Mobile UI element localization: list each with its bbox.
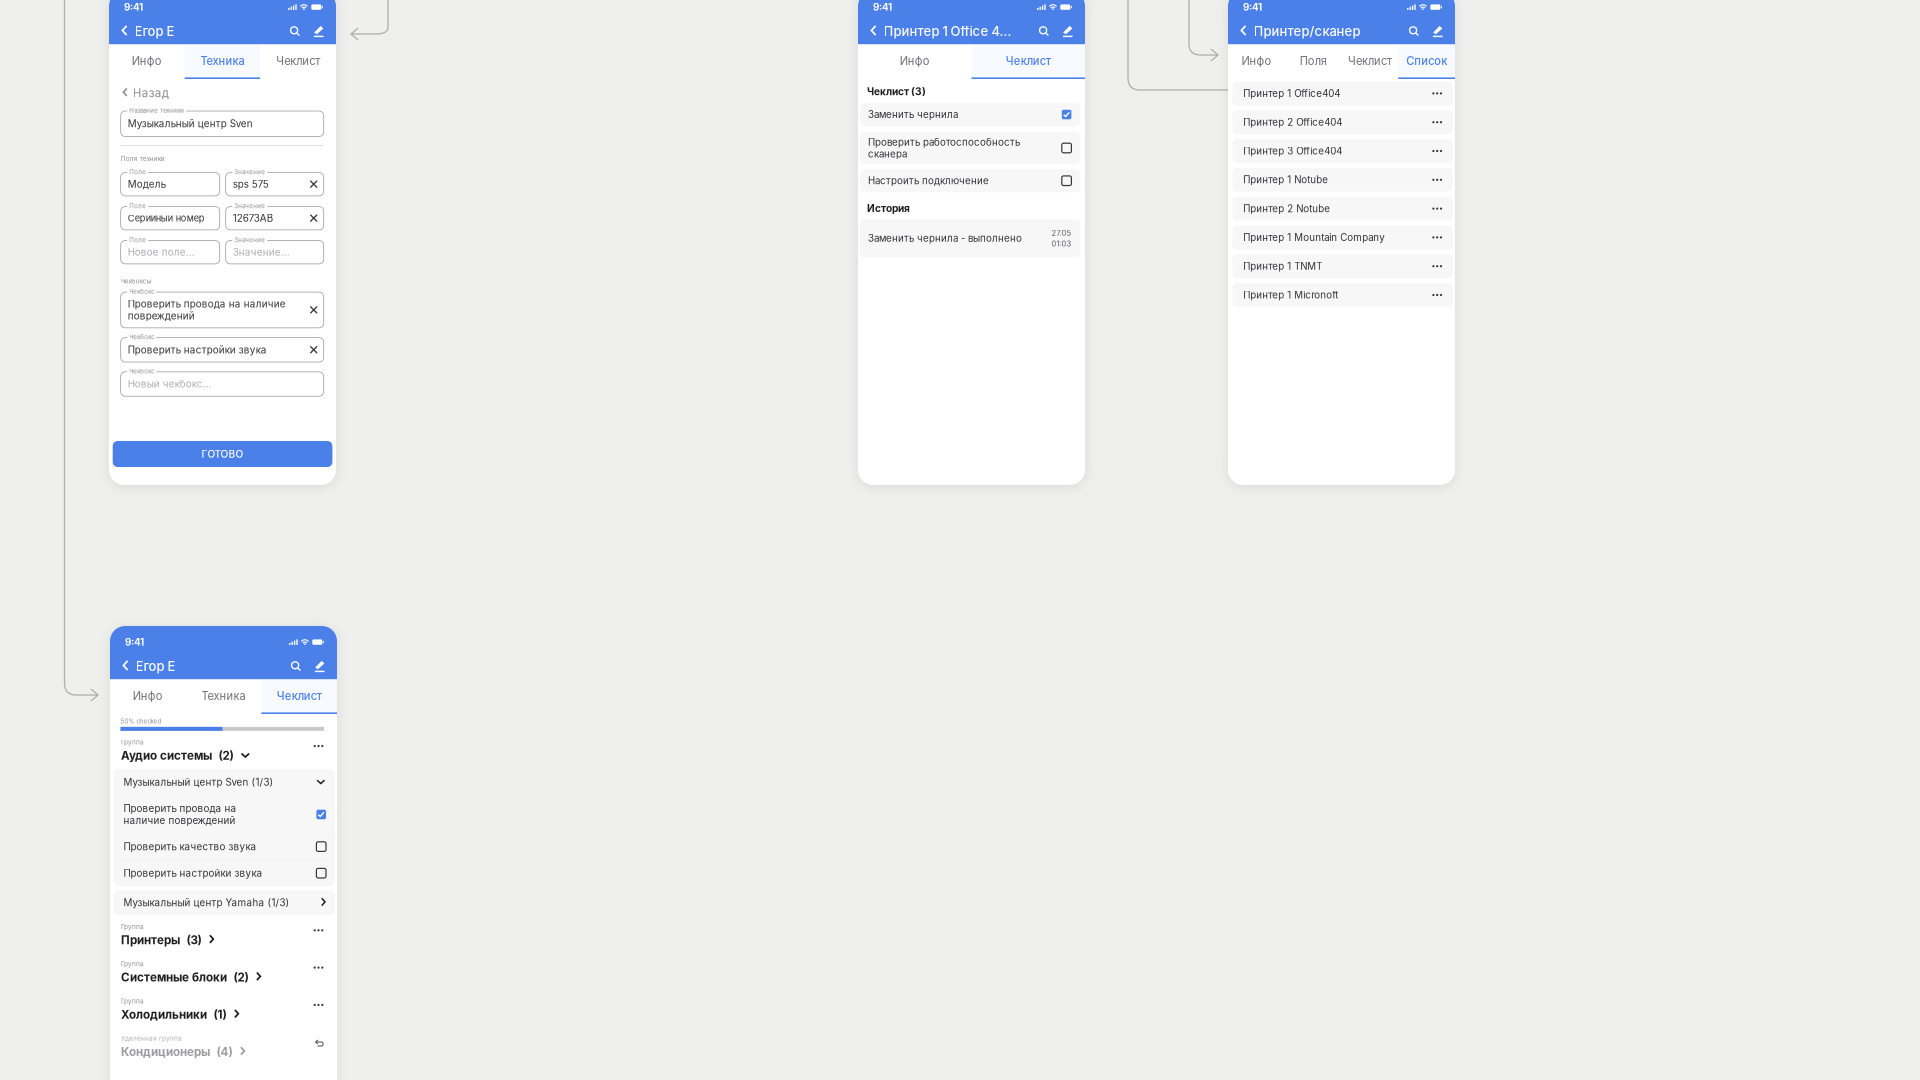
button[interactable]: Edit [1424, 20, 1455, 42]
button[interactable]: Принтер 1 Office404 [1232, 81, 1453, 105]
button[interactable]: More options [313, 916, 324, 953]
staticText: Принтер 1 Micronoft [1243, 289, 1338, 301]
button[interactable]: More options [313, 991, 324, 1028]
button[interactable]: More options [1432, 81, 1443, 105]
staticText: Принтер 1 TNMT [1243, 260, 1322, 272]
button[interactable]: Чеклист [1341, 45, 1398, 79]
button[interactable]: Search [286, 20, 305, 42]
button[interactable]: Принтер 2 Office404 [1232, 110, 1453, 134]
button[interactable]: More options [1432, 283, 1443, 307]
button[interactable]: Чеклист [260, 45, 336, 79]
staticText: Название техники [129, 107, 184, 114]
button[interactable]: More options [1432, 110, 1443, 134]
button[interactable]: Техника [186, 680, 261, 714]
staticText: Чекбокс [129, 288, 154, 295]
button[interactable]: Назад [109, 82, 169, 104]
button[interactable]: Чеклист [261, 680, 337, 714]
button[interactable]: Настроить подключение [860, 169, 1080, 192]
button[interactable]: Back [109, 20, 135, 42]
button[interactable]: Back [1228, 20, 1254, 42]
button[interactable]: More options [1432, 254, 1443, 278]
button[interactable]: Принтер 1 TNMT [1232, 254, 1453, 278]
button[interactable]: More options [1432, 225, 1443, 249]
staticText: Настроить подключение [868, 175, 989, 186]
staticText: Принтер 1 Mountain Company [1243, 231, 1384, 243]
staticText: Проверить качество звука [124, 841, 257, 852]
staticText: Поле [129, 236, 146, 244]
staticText: Инфо [132, 54, 162, 68]
staticText: Поля техники [121, 155, 165, 162]
button[interactable]: Edit [1054, 20, 1085, 42]
staticText: Список [1406, 54, 1447, 68]
button[interactable]: Инфо [109, 45, 185, 79]
button[interactable]: Инфо [110, 680, 186, 714]
button[interactable]: More options [313, 953, 324, 991]
button[interactable]: Группа [121, 953, 261, 991]
button[interactable]: Back [858, 20, 884, 42]
staticText: Инфо [133, 689, 163, 703]
button[interactable]: Список [1398, 45, 1455, 79]
button[interactable]: Принтер 1 Notube [1232, 168, 1453, 192]
staticText: Проверить работоспособность сканера [868, 136, 1020, 160]
staticText: Группа [121, 923, 144, 930]
button[interactable]: Search [287, 655, 306, 677]
button[interactable]: Инфо [1228, 45, 1285, 79]
button[interactable]: More options [1432, 197, 1443, 220]
staticText: Инфо [1241, 54, 1271, 68]
button[interactable]: Удаленная группа [121, 1028, 245, 1065]
staticText: Музыкальный центр Sven [128, 118, 253, 130]
staticText: Поля [1300, 54, 1327, 68]
staticText: Чекбокс [129, 368, 154, 375]
staticText: (2) [218, 749, 233, 763]
button[interactable]: Проверить провода на наличие повреждений [114, 796, 335, 833]
button[interactable]: More options [1432, 168, 1443, 192]
button[interactable]: Принтер 3 Office404 [1232, 139, 1453, 163]
button[interactable]: ГОТОВО [113, 441, 332, 467]
staticText: Принтер 1 Notube [1243, 174, 1328, 186]
button[interactable]: More options [1432, 139, 1443, 163]
button[interactable]: Инфо [858, 45, 971, 79]
button[interactable]: Поля [1285, 45, 1342, 79]
button[interactable]: More options [313, 732, 324, 769]
button[interactable]: Принтер 1 Mountain Company [1232, 225, 1453, 249]
button[interactable]: Edit [305, 20, 336, 42]
button[interactable]: Техника [185, 45, 260, 79]
staticText: Принтер 3 Office404 [1243, 145, 1342, 157]
button[interactable]: Группа [121, 991, 239, 1028]
button[interactable]: Принтер 2 Notube [1232, 197, 1453, 220]
button[interactable]: Группа [121, 916, 214, 953]
staticText: Техника [200, 54, 244, 68]
staticText: Музыкальный центр Yamaha (1/3) [124, 897, 290, 909]
button[interactable]: Проверить настройки звука [114, 860, 335, 886]
button[interactable]: Музыкальный центр Sven (1/3) [114, 769, 335, 795]
button[interactable]: Музыкальный центр Yamaha (1/3) [114, 890, 335, 915]
button[interactable]: Edit [306, 655, 337, 677]
button[interactable]: Проверить качество звука [114, 834, 335, 860]
staticText: Чеклист [276, 54, 320, 68]
staticText: (1) [213, 1007, 226, 1021]
button[interactable]: Чеклист [971, 45, 1085, 79]
staticText: Значение... [233, 246, 290, 258]
staticText: Проверить настройки звука [124, 867, 263, 879]
button[interactable]: Заменить чернила [860, 103, 1080, 126]
button[interactable]: Группа [121, 732, 251, 769]
button[interactable]: Принтер 1 Micronoft [1232, 283, 1453, 307]
staticText: Значение [234, 168, 265, 176]
button[interactable]: Restore group [314, 1028, 324, 1065]
button[interactable]: Search [1035, 20, 1054, 42]
staticText: 01:03 [1051, 239, 1071, 248]
staticText: Проверить настройки звука [128, 344, 267, 356]
staticText: Музыкальный центр Sven (1/3) [124, 776, 274, 788]
staticText: Назад [133, 86, 169, 100]
button[interactable]: Search [1405, 20, 1424, 42]
button[interactable]: Back [110, 655, 136, 677]
staticText: Модель [128, 178, 166, 190]
staticText: Принтер 1 Office 4... [884, 23, 1012, 39]
staticText: (2) [233, 970, 248, 984]
staticText: Инфо [900, 54, 930, 68]
staticText: Системные блоки [121, 970, 227, 984]
staticText: 12673AB [233, 212, 273, 224]
staticText: 9:41 [124, 1, 143, 13]
staticText: Принтер/сканер [1254, 23, 1361, 39]
button[interactable]: Проверить работоспособность сканера [860, 132, 1080, 164]
